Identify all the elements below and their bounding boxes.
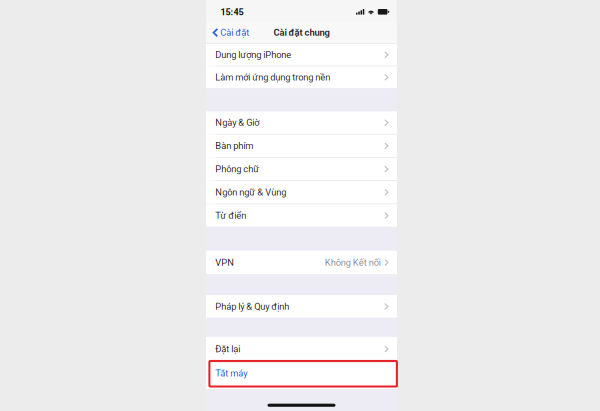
button[interactable]: Làm mới ứng dụng trong nền	[206, 66, 397, 88]
button[interactable]: Từ điển	[206, 204, 397, 227]
staticText: Cài đặt chung	[273, 27, 329, 38]
button[interactable]: Đặt lại	[206, 337, 397, 361]
staticText: Pháp lý & Quy định	[215, 301, 289, 312]
button[interactable]: Pháp lý & Quy định	[206, 295, 397, 318]
button[interactable]: Phông chữ	[206, 158, 397, 180]
button[interactable]: Cài đặt	[206, 22, 254, 43]
staticText: Từ điển	[215, 210, 246, 221]
button[interactable]: Dung lượng iPhone	[206, 44, 397, 66]
button[interactable]: Tắt máy	[206, 362, 397, 389]
staticText: Ngôn ngữ & Vùng	[215, 187, 286, 198]
button[interactable]: Ngày & Giờ	[206, 111, 397, 134]
button[interactable]: Bàn phím	[206, 135, 397, 157]
staticText: Đặt lại	[215, 344, 240, 354]
staticText: Làm mới ứng dụng trong nền	[215, 72, 330, 83]
button[interactable]: Ngôn ngữ & Vùng	[206, 181, 397, 204]
staticText: Bàn phím	[215, 140, 253, 151]
staticText: Phông chữ	[215, 164, 259, 174]
staticText: Không Kết nối	[325, 257, 381, 268]
staticText: Cài đặt	[220, 27, 249, 38]
staticText: VPN	[215, 257, 234, 268]
staticText: 15:45	[220, 7, 243, 17]
staticText: Dung lượng iPhone	[215, 49, 291, 60]
staticText: Ngày & Giờ	[215, 117, 259, 128]
staticText: Tắt máy	[215, 368, 247, 379]
button[interactable]: VPN	[206, 251, 397, 274]
